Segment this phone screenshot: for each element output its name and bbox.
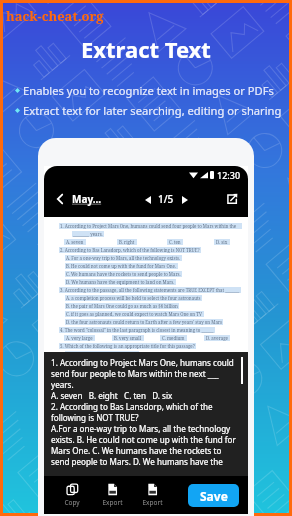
staticText: Enables you to recognize text in images … — [23, 83, 274, 98]
staticText: 1. According to Project Mars One, humans… — [51, 357, 236, 467]
button[interactable]: Export — [92, 483, 132, 507]
staticText: Export — [102, 498, 123, 507]
staticText: B. He could not come up with the fund fo… — [66, 263, 177, 269]
staticText: D. average — [206, 335, 228, 341]
staticText: 2. According to Bas Lansdorp, which of t… — [60, 247, 200, 253]
staticText: D. the four astronauts could return to E… — [66, 319, 222, 325]
staticText: A. very large — [66, 335, 93, 341]
staticText: A. For a one-way trip to Mars, all the t… — [66, 255, 181, 261]
staticText: 5. Which of the following is an appropri… — [60, 343, 195, 349]
staticText: Export — [142, 498, 163, 507]
staticText: C. We humans have the rockets to send pe… — [66, 271, 181, 277]
button[interactable]: Previous page — [142, 194, 153, 205]
staticText: Extract Text — [81, 34, 211, 64]
button[interactable]: Back — [52, 191, 68, 207]
button[interactable]: Save — [188, 484, 239, 507]
button[interactable]: Export — [132, 483, 172, 507]
staticText: B. very small — [114, 335, 142, 341]
staticText: A. seven — [66, 239, 84, 245]
staticText: B. right — [119, 239, 135, 245]
staticText: 1/5 — [158, 192, 174, 206]
staticText: C. ten — [169, 239, 181, 245]
button[interactable]: Copy — [52, 483, 92, 507]
staticText: 4. The word "colossal" in the last parag… — [60, 327, 214, 333]
staticText: D. We humans have the equipment to land … — [66, 279, 175, 285]
staticText: 1. According to Project Mars One, humans… — [60, 223, 241, 229]
staticText: Save — [200, 488, 228, 504]
staticText: Extract text for later searching, editin… — [23, 103, 282, 118]
staticText: 12:30 — [217, 169, 241, 181]
staticText: hack-cheat.org — [6, 7, 104, 25]
staticText: C. medium — [162, 335, 185, 341]
button[interactable]: Next page — [179, 194, 190, 205]
button[interactable]: Share — [223, 190, 241, 208]
staticText: ________ years. — [73, 231, 103, 237]
staticText: D. six — [216, 239, 228, 245]
staticText: Copy — [64, 498, 80, 507]
staticText: A. a completion process will be held to … — [66, 295, 201, 301]
staticText: 3. According to the passage, all the fol… — [60, 287, 240, 293]
staticText: C. if it goes as planned, we could expec… — [66, 311, 203, 317]
button[interactable]: May... — [72, 192, 102, 206]
staticText: B. the pair of Mars One could go as much… — [66, 303, 178, 309]
